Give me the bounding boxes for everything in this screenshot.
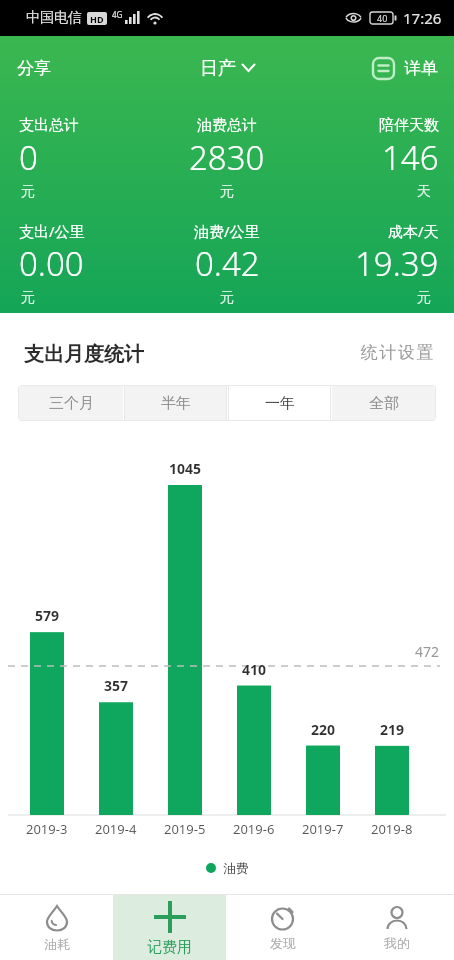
button[interactable]: 全部 (332, 386, 435, 420)
staticText: 详单 (404, 58, 438, 79)
staticText: 天 (417, 183, 431, 201)
button[interactable]: 发现 (226, 895, 340, 960)
staticText: 油费/公里 (194, 221, 260, 241)
staticText: 2019-4 (95, 820, 137, 838)
staticText: 一年 (265, 394, 295, 413)
staticText: 357 (104, 676, 129, 695)
button[interactable]: 详单 (371, 56, 438, 81)
staticText: 219 (380, 720, 405, 739)
staticText: 日产 (200, 57, 236, 80)
button[interactable]: 一年 (229, 386, 330, 420)
staticText: 支出月度统计 (24, 342, 144, 367)
staticText: 410 (242, 660, 267, 679)
button[interactable]: 统计设置 (0, 342, 434, 363)
staticText: 三个月 (49, 394, 94, 413)
staticText: 统计设置 (360, 342, 434, 363)
staticText: 油费总计 (197, 116, 257, 135)
staticText: 油费 (223, 860, 249, 876)
staticText: HD (90, 13, 104, 25)
staticText: 579 (35, 606, 60, 625)
staticText: 元 (220, 183, 234, 201)
staticText: 我的 (384, 935, 410, 951)
staticText: 2019-8 (371, 820, 413, 838)
button[interactable]: 油耗 (0, 895, 113, 960)
staticText: 全部 (369, 394, 399, 413)
staticText: 40 (377, 12, 388, 24)
staticText: 元 (21, 289, 35, 307)
staticText: 分享 (17, 58, 51, 79)
button[interactable]: 日产 (200, 57, 255, 80)
staticText: 记费用 (147, 938, 192, 957)
staticText: 中国电信 (26, 9, 82, 27)
button[interactable]: 分享 (17, 58, 51, 79)
staticText: 2019-6 (233, 820, 275, 838)
staticText: 2019-3 (26, 820, 68, 838)
button[interactable]: 我的 (340, 895, 454, 960)
staticText: 支出总计 (19, 116, 79, 135)
staticText: 支出/公里 (19, 221, 85, 241)
staticText: 2019-5 (164, 820, 206, 838)
staticText: 元 (417, 289, 431, 307)
staticText: 19.39 (355, 241, 439, 286)
staticText: 发现 (270, 935, 296, 951)
button[interactable]: 记费用 (113, 895, 226, 960)
staticText: 146 (382, 135, 439, 180)
staticText: 成本/天 (388, 221, 439, 241)
staticText: 220 (311, 720, 336, 739)
button[interactable]: 半年 (125, 386, 226, 420)
button[interactable]: 三个月 (19, 386, 123, 420)
staticText: 4G (112, 9, 123, 20)
staticText: 1045 (169, 459, 202, 478)
staticText: 陪伴天数 (379, 116, 439, 135)
staticText: 油耗 (44, 936, 70, 952)
staticText: 2830 (189, 135, 265, 180)
staticText: 2019-7 (302, 820, 344, 838)
staticText: 0.42 (195, 241, 260, 286)
staticText: 17:26 (403, 8, 442, 28)
staticText: 0.00 (19, 241, 84, 286)
staticText: 472 (415, 642, 440, 661)
staticText: 元 (220, 289, 234, 307)
staticText: 元 (21, 183, 35, 201)
staticText: 0 (19, 135, 38, 180)
staticText: 半年 (161, 394, 191, 413)
